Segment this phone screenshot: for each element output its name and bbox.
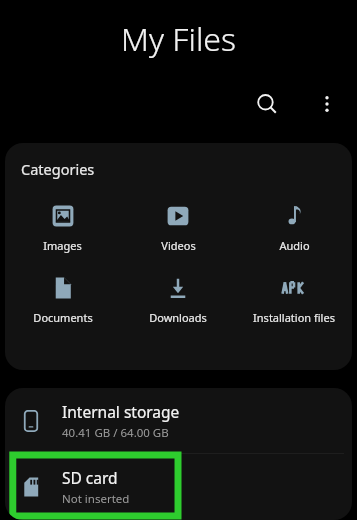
staticText: 40.41 GB / 64.00 GB (62, 425, 169, 441)
button[interactable]: Internal storage (5, 388, 352, 453)
button[interactable]: Installation files (236, 273, 352, 327)
button[interactable]: Downloads (120, 273, 236, 327)
staticText: Documents (33, 310, 93, 325)
button[interactable]: More options (307, 84, 347, 124)
button[interactable]: Documents (5, 273, 120, 327)
staticText: Categories (21, 159, 95, 179)
staticText: Internal storage (62, 401, 180, 422)
button[interactable]: Images (5, 201, 120, 255)
staticText: SD card (62, 467, 118, 488)
staticText: Audio (279, 238, 310, 253)
staticText: Installation files (253, 310, 335, 325)
button[interactable]: Videos (120, 201, 236, 255)
staticText: Videos (161, 238, 196, 253)
staticText: My Files (121, 17, 236, 61)
staticText: Not inserted (62, 491, 130, 507)
button[interactable]: Audio (236, 201, 352, 255)
button[interactable]: SD card (5, 454, 352, 519)
button[interactable]: Search (245, 82, 289, 126)
staticText: Images (43, 238, 82, 253)
staticText: Downloads (149, 310, 207, 325)
